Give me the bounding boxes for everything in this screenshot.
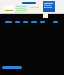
button[interactable] bbox=[29, 5, 41, 13]
button[interactable]: Filter chip bbox=[15, 21, 20, 23]
button[interactable]: Details panel bbox=[43, 1, 55, 12]
button[interactable]: Continue bbox=[2, 66, 22, 69]
button[interactable]: Filter chip bbox=[23, 21, 28, 23]
button[interactable]: Filter chip bbox=[40, 21, 45, 23]
button[interactable]: Filter chip bbox=[31, 21, 37, 23]
button[interactable]: Filter chip bbox=[5, 21, 12, 23]
button[interactable]: Filter chip bbox=[53, 21, 58, 23]
button[interactable] bbox=[15, 5, 28, 13]
button[interactable] bbox=[22, 2, 36, 4]
button[interactable] bbox=[4, 5, 14, 13]
